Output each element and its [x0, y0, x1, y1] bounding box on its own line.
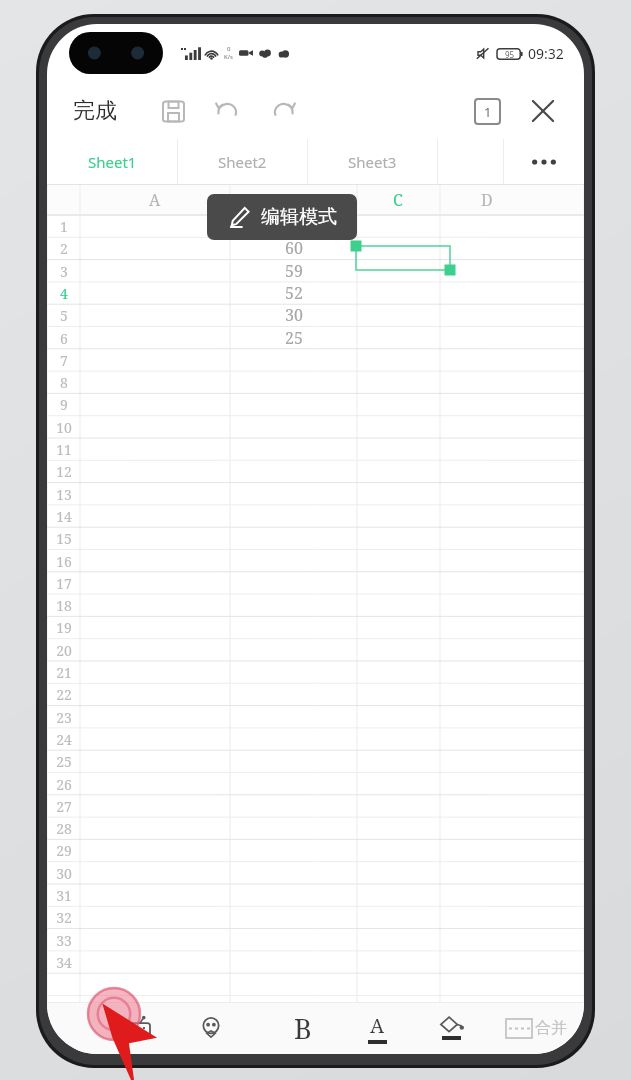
staticText: 59 [285, 260, 303, 282]
button[interactable]: 17 [47, 572, 80, 594]
button[interactable]: 5 [47, 304, 80, 326]
button[interactable]: B [279, 189, 307, 211]
staticText: 33 [56, 931, 72, 950]
staticText: 27 [56, 797, 72, 816]
staticText: 11 [56, 440, 72, 459]
button[interactable]: Sticker [174, 1002, 248, 1054]
staticText: Sheet3 [348, 152, 397, 172]
staticText: 合并 [535, 1018, 567, 1038]
staticText: 3 [60, 262, 68, 281]
button[interactable]: Redo [263, 91, 303, 131]
button[interactable]: 22 [47, 683, 80, 705]
button[interactable]: 31 [47, 884, 80, 906]
button[interactable]: Sheet1 [47, 139, 177, 184]
button[interactable]: 33 [47, 929, 80, 951]
button[interactable]: 15 [47, 527, 80, 549]
staticText: 9 [60, 395, 68, 414]
button[interactable]: Close [522, 90, 564, 132]
staticText: 7 [60, 351, 68, 370]
button[interactable]: Keyboard [99, 1002, 174, 1054]
button[interactable]: Windows [466, 90, 508, 132]
button[interactable]: 29 [47, 839, 80, 861]
button[interactable]: Bold [266, 1002, 340, 1054]
button[interactable]: 30 [47, 862, 80, 884]
button[interactable]: More options [504, 139, 584, 184]
staticText: 15 [56, 529, 72, 548]
staticText: 1 [484, 103, 492, 121]
button[interactable]: C [384, 189, 412, 211]
button[interactable]: 3 [47, 260, 80, 282]
staticText: 0 [227, 45, 231, 53]
staticText: 26 [56, 775, 72, 794]
staticText: 10 [56, 418, 72, 437]
staticText: 8 [60, 373, 68, 392]
staticText: 30 [285, 304, 303, 326]
button[interactable]: 7 [47, 349, 80, 371]
staticText: A [370, 1012, 385, 1039]
button[interactable]: 32 [47, 906, 80, 928]
button[interactable]: 20 [47, 639, 80, 661]
staticText: 4 [60, 284, 68, 303]
button[interactable]: Sheet3 [308, 139, 437, 184]
staticText: 29 [56, 841, 72, 860]
staticText: Sheet1 [88, 152, 137, 172]
button[interactable]: 18 [47, 594, 80, 616]
button[interactable]: 完成 [69, 91, 121, 131]
button[interactable]: 11 [47, 438, 80, 460]
button[interactable]: 10 [47, 416, 80, 438]
button[interactable]: 6 [47, 327, 80, 349]
staticText: 2 [60, 239, 68, 258]
button[interactable]: 12 [47, 460, 80, 482]
button[interactable]: 28 [47, 817, 80, 839]
staticText: 95 [505, 49, 515, 60]
staticText: 09:32 [528, 44, 564, 63]
button[interactable]: 1 [47, 215, 80, 237]
staticText: 14 [56, 507, 72, 526]
staticText: 16 [56, 552, 72, 571]
staticText: 12 [56, 462, 72, 481]
button[interactable]: Undo [207, 91, 247, 131]
staticText: 60 [285, 237, 303, 259]
button[interactable]: 26 [47, 773, 80, 795]
button[interactable]: 2 [47, 237, 80, 259]
button[interactable]: Save [153, 91, 193, 131]
staticText: 25 [56, 752, 72, 771]
button[interactable]: 16 [47, 550, 80, 572]
button[interactable]: 23 [47, 706, 80, 728]
button[interactable]: 25 [47, 750, 80, 772]
button[interactable]: 34 [47, 951, 80, 973]
staticText: B [294, 1010, 312, 1047]
staticText: 21 [56, 663, 72, 682]
staticText: K/s [224, 53, 233, 61]
button[interactable]: Fill color [414, 1002, 488, 1054]
button[interactable]: 13 [47, 483, 80, 505]
button[interactable]: 19 [47, 616, 80, 638]
staticText: 25 [285, 327, 303, 349]
staticText: 17 [56, 574, 72, 593]
staticText: 完成 [73, 97, 117, 125]
button[interactable]: 4 [47, 282, 80, 304]
staticText: 20 [56, 641, 72, 660]
staticText: 52 [285, 282, 303, 304]
staticText: B [288, 189, 299, 211]
button[interactable]: 24 [47, 728, 80, 750]
staticText: D [481, 189, 493, 211]
button[interactable]: A [141, 189, 169, 211]
staticText: Sheet2 [218, 152, 267, 172]
button[interactable]: 9 [47, 393, 80, 415]
button[interactable]: D [473, 189, 501, 211]
staticText: 22 [56, 685, 72, 704]
button[interactable]: Sheet2 [178, 139, 307, 184]
staticText: 18 [56, 596, 72, 615]
staticText: 34 [56, 953, 72, 972]
button[interactable]: 27 [47, 795, 80, 817]
button[interactable]: Font color [340, 1002, 414, 1054]
button[interactable]: 14 [47, 505, 80, 527]
staticText: 24 [56, 730, 72, 749]
button[interactable]: 合并 [488, 1002, 584, 1054]
staticText: 32 [56, 908, 72, 927]
button[interactable]: 21 [47, 661, 80, 683]
button[interactable]: 8 [47, 371, 80, 393]
staticText: A [149, 189, 161, 211]
